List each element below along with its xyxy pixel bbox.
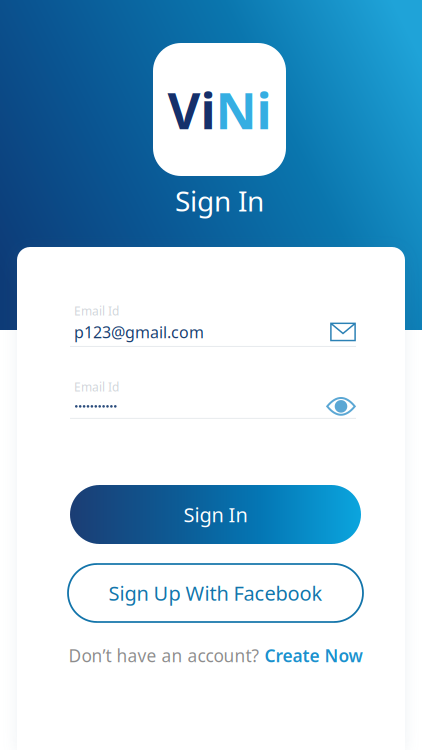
staticText: Sign In <box>183 501 247 528</box>
button[interactable]: Sign In <box>70 485 361 544</box>
staticText: Create Now <box>264 644 362 667</box>
staticText: Email Id <box>74 303 119 319</box>
staticText: Sign Up With Facebook <box>108 580 322 606</box>
staticText: Email Id <box>74 379 119 395</box>
button[interactable]: Create Now <box>264 644 362 667</box>
staticText: Vi <box>167 76 215 143</box>
staticText: Ni <box>215 76 271 143</box>
staticText: Don’t have an account? <box>68 644 259 667</box>
staticText: Sign In <box>175 182 264 219</box>
button[interactable]: Sign Up With Facebook <box>70 564 363 622</box>
staticText: p123@gmail.com <box>74 321 204 342</box>
